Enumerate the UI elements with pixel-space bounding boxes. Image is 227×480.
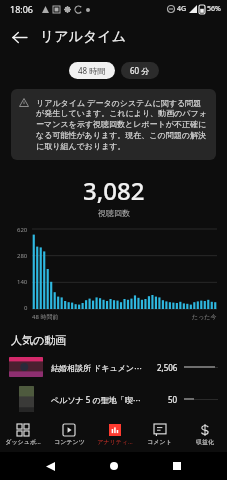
button[interactable]: ダッシュボ…: [0, 418, 46, 452]
staticText: コメント: [147, 438, 172, 446]
staticText: 48 時間: [78, 65, 106, 76]
button[interactable]: ホーム: [100, 452, 128, 480]
staticText: 2,506: [157, 362, 178, 373]
staticText: アナリティ…: [97, 438, 133, 446]
staticText: 人気の動画: [11, 333, 67, 347]
button[interactable]: 履歴: [163, 452, 191, 480]
staticText: 140: [17, 278, 28, 286]
button[interactable]: 60 分: [121, 62, 159, 79]
staticText: ペルソナ 5 の聖地「喫茶茶…: [51, 394, 148, 405]
staticText: 4G: [177, 4, 187, 14]
button[interactable]: 48 時間: [69, 62, 115, 79]
staticText: 結婚相談所 ドキュメンタリ…: [51, 362, 148, 373]
button[interactable]: コメント: [137, 418, 182, 452]
staticText: 280: [17, 252, 28, 260]
staticText: コンテンツ: [54, 438, 85, 446]
staticText: たった今: [192, 313, 217, 321]
staticText: 50: [168, 394, 178, 405]
staticText: 18:06: [10, 3, 34, 15]
staticText: 60 分: [130, 65, 150, 76]
button[interactable]: 戻る: [0, 18, 38, 56]
staticText: 48 時間前: [32, 313, 59, 321]
staticText: 0: [24, 304, 28, 312]
button[interactable]: アナリティ…: [92, 418, 137, 452]
staticText: 56%: [207, 4, 221, 14]
staticText: 収益化: [196, 438, 214, 446]
button[interactable]: ペルソナ 5 の聖地「喫茶茶…: [0, 383, 227, 415]
button[interactable]: 結婚相談所 ドキュメンタリ…: [0, 351, 227, 383]
button[interactable]: 戻る: [36, 452, 64, 480]
staticText: リアルタイム データのシステムに関する問題が発生しています。これにより、動画のパ…: [36, 97, 208, 152]
staticText: ダッシュボ…: [5, 438, 41, 446]
staticText: リアルタイム: [40, 28, 126, 46]
button[interactable]: コンテンツ: [46, 418, 92, 452]
staticText: 視聴回数: [98, 208, 130, 218]
button[interactable]: リアルタイム データのシステムに関する問題が発生しています。これにより、動画のパ…: [11, 89, 216, 160]
button[interactable]: 収益化: [182, 418, 227, 452]
staticText: 3,082: [83, 174, 145, 207]
staticText: 620: [17, 226, 28, 234]
